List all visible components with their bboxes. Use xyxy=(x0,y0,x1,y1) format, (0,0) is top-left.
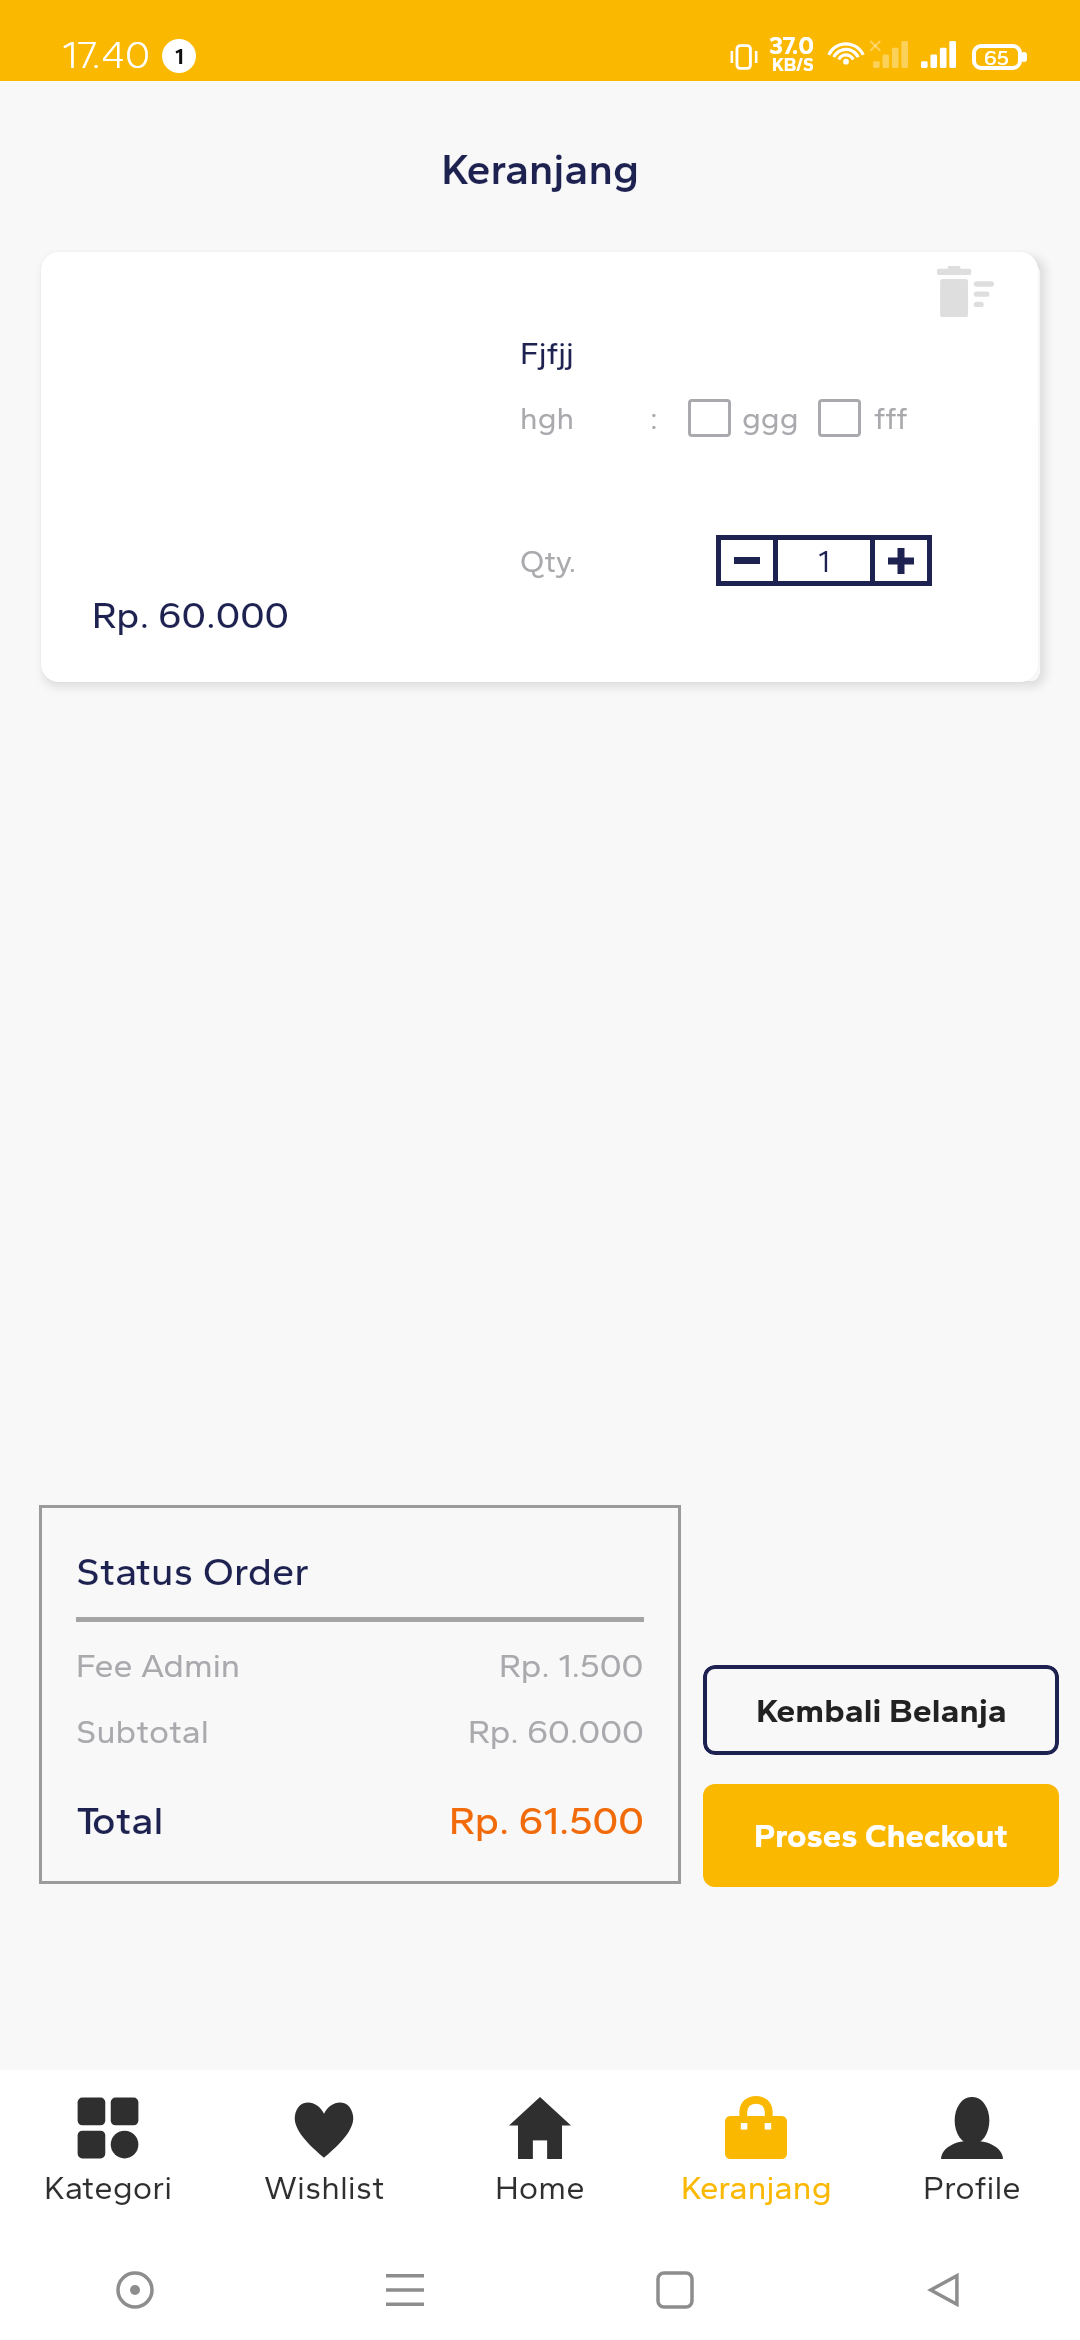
button[interactable]: Decrease quantity xyxy=(721,540,773,581)
button[interactable]: Delete item xyxy=(41,252,1038,682)
staticText: hgh xyxy=(520,400,575,437)
staticText: 65 xyxy=(984,45,1010,70)
staticText: Status Order xyxy=(76,1547,310,1595)
staticText: 1 xyxy=(818,543,830,579)
staticText: Home xyxy=(495,2168,585,2208)
staticText: 1 xyxy=(175,43,184,69)
staticText: fff xyxy=(874,400,908,437)
staticText: Qty. xyxy=(520,543,577,580)
staticText: Rp. 60.000 xyxy=(92,592,289,638)
staticText: Kembali Belanja xyxy=(756,1690,1007,1731)
button[interactable]: Profile xyxy=(864,2070,1080,2240)
button[interactable]: Keranjang xyxy=(648,2070,864,2240)
staticText: Keranjang xyxy=(681,2168,832,2208)
button[interactable]: Wishlist xyxy=(216,2070,432,2240)
staticText: : xyxy=(650,400,658,437)
staticText: 17.40 xyxy=(62,31,151,78)
staticText: Fjfjj xyxy=(520,334,574,372)
staticText: Rp. 61.500 xyxy=(449,1796,644,1844)
button[interactable]: Home xyxy=(432,2070,648,2240)
staticText: 37.0 xyxy=(769,31,814,60)
staticText: Wishlist xyxy=(264,2168,385,2208)
staticText: KB/S xyxy=(772,54,814,76)
button[interactable]: Kategori xyxy=(0,2070,216,2240)
button[interactable]: Proses Checkout xyxy=(703,1784,1059,1887)
staticText: Rp. 60.000 xyxy=(468,1711,644,1752)
staticText: Subtotal xyxy=(76,1711,209,1752)
staticText: Fee Admin xyxy=(76,1645,241,1686)
staticText: Keranjang xyxy=(0,143,1080,195)
staticText: Kategori xyxy=(44,2168,173,2208)
staticText: Total xyxy=(76,1796,164,1844)
staticText: ggg xyxy=(742,400,799,437)
button[interactable]: Delete item xyxy=(937,266,994,317)
staticText: Profile xyxy=(923,2168,1021,2208)
button[interactable]: Increase quantity xyxy=(875,540,927,581)
button[interactable]: Kembali Belanja xyxy=(703,1665,1059,1755)
staticText: Proses Checkout xyxy=(754,1816,1008,1856)
staticText: Rp. 1.500 xyxy=(499,1645,644,1686)
